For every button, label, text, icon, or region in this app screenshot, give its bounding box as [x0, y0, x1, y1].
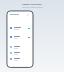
button[interactable] — [10, 35, 30, 39]
staticText: Routines — [10, 13, 19, 16]
button[interactable] — [10, 26, 30, 30]
staticText: Flexible Automation — [22, 3, 42, 6]
button[interactable]: Routines — [10, 13, 29, 16]
button[interactable] — [10, 57, 30, 61]
button[interactable] — [10, 51, 30, 55]
staticText: Build smart routines in seconds — [22, 7, 43, 9]
button[interactable] — [10, 45, 30, 49]
